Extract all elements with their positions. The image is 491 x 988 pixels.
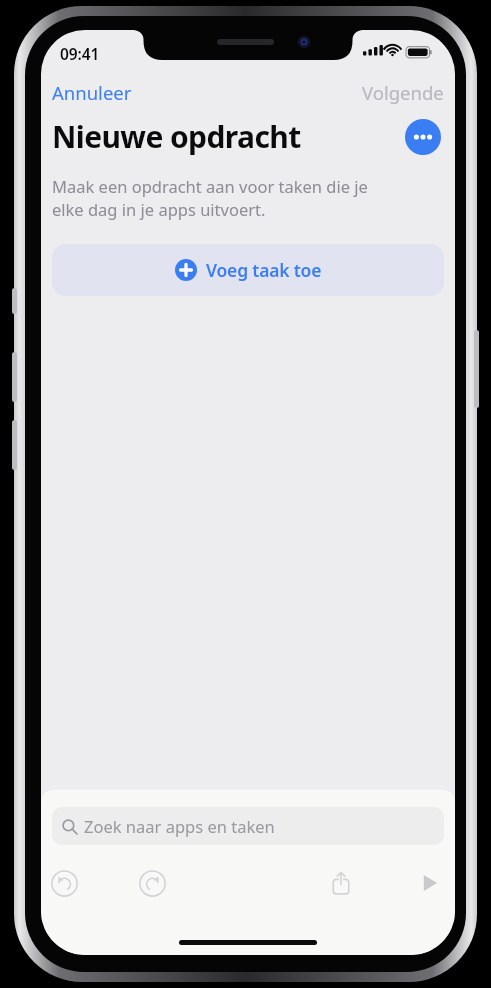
- button[interactable]: Opnieuw: [136, 867, 168, 899]
- staticText: Annuleer: [52, 80, 132, 105]
- staticText: Zoek naar apps en taken: [84, 815, 275, 837]
- staticText: 09:41: [60, 43, 100, 64]
- button[interactable]: Volgende: [355, 76, 451, 109]
- staticText: Nieuwe opdracht: [52, 116, 301, 157]
- staticText: Voeg taak toe: [206, 258, 322, 282]
- button[interactable]: Meer opties: [405, 119, 441, 155]
- button[interactable]: Ongedaan maken: [48, 867, 80, 899]
- button[interactable]: Voeg taak toe: [52, 244, 444, 296]
- button[interactable]: Deel: [325, 867, 357, 899]
- button[interactable]: Annuleer: [45, 76, 139, 109]
- button[interactable]: Voer uit: [413, 867, 445, 899]
- button[interactable]: Zoek naar apps en taken: [52, 807, 444, 845]
- staticText: Volgende: [362, 80, 444, 105]
- staticText: Maak een opdracht aan voor taken die je …: [52, 175, 368, 221]
